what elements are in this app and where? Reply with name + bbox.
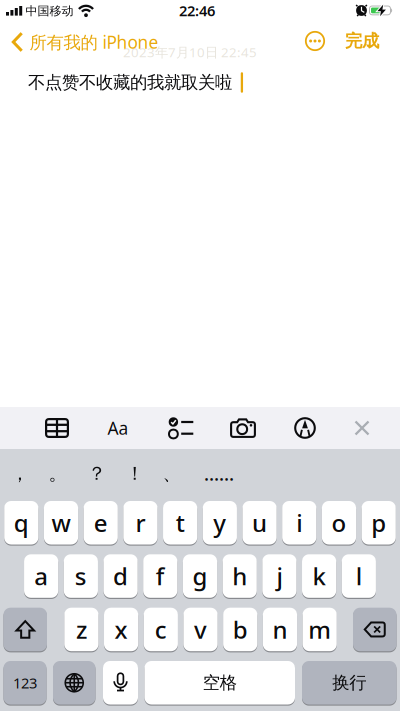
staticText: 中国移动 [25,4,73,18]
staticText: w [51,507,70,539]
button[interactable]: 换行 [302,661,396,704]
staticText: y [213,507,226,539]
button[interactable]: i [282,501,316,544]
staticText: ！ [125,462,144,485]
button[interactable]: l [342,554,376,598]
staticText: d [113,560,128,592]
staticText: 不点赞不收藏的我就取关啦 [28,72,232,93]
staticText: 2023年7月10日 22:45 [123,43,257,61]
button[interactable]: ！ [117,453,153,493]
staticText: i [296,507,302,539]
button[interactable]: m [303,608,337,651]
button[interactable]: d [103,554,138,598]
button[interactable]: z [64,608,98,651]
button[interactable]: k [302,554,336,598]
button[interactable]: h [223,554,257,598]
button[interactable]: 完成 [337,26,387,56]
staticText: …… [204,461,234,486]
staticText: 、 [162,462,181,485]
staticText: ， [10,462,29,485]
staticText: g [192,560,207,592]
button[interactable]: b [223,608,257,651]
button[interactable]: 123 [3,661,46,704]
button[interactable]: …… [201,453,237,493]
staticText: o [331,507,346,539]
button[interactable]: Shift [3,608,47,651]
button[interactable]: 更多 [300,26,330,56]
button[interactable]: ？ [79,453,115,493]
button[interactable]: 标记 [283,407,327,449]
button[interactable]: n [263,608,297,651]
staticText: u [252,507,267,539]
staticText: n [272,613,287,645]
button[interactable]: v [183,608,218,651]
staticText: 空格 [203,672,237,693]
staticText: 所有我的 iPhone [29,30,158,53]
staticText: Aa [107,416,128,439]
staticText: 完成 [345,30,379,52]
button[interactable]: 格式 [96,407,140,449]
button[interactable]: 删除 [353,608,396,651]
staticText: l [356,560,362,592]
button[interactable]: e [84,501,118,544]
button[interactable]: g [183,554,217,598]
button[interactable]: y [203,501,237,544]
staticText: 123 [13,673,37,692]
button[interactable]: 。 [40,453,76,493]
button[interactable]: u [242,501,277,544]
staticText: c [155,613,167,645]
staticText: 22:46 [179,1,215,20]
staticText: e [94,507,108,539]
staticText: k [313,560,326,592]
button[interactable]: r [123,501,157,544]
staticText: a [34,560,48,592]
button[interactable]: a [24,554,58,598]
button[interactable]: 下一个键盘 [53,661,95,704]
button[interactable]: p [362,501,396,544]
button[interactable]: j [262,554,296,598]
button[interactable]: 所有我的 iPhone [11,30,158,53]
button[interactable]: 表格 [35,407,79,449]
button[interactable]: 、 [154,453,190,493]
staticText: t [176,507,185,539]
staticText: v [194,613,207,645]
button[interactable]: q [4,501,38,544]
button[interactable]: s [64,554,98,598]
staticText: 换行 [332,672,366,693]
staticText: p [371,507,386,539]
button[interactable]: ， [2,453,38,493]
staticText: s [75,560,87,592]
staticText: r [135,507,145,539]
button[interactable]: f [143,554,177,598]
button[interactable]: 关闭 [340,407,384,449]
staticText: ？ [87,462,106,485]
staticText: q [14,507,29,539]
staticText: z [76,613,87,645]
button[interactable]: w [44,501,78,544]
staticText: f [156,560,165,592]
button[interactable]: 听写 [103,661,138,704]
staticText: b [233,613,248,645]
button[interactable]: 相机 [221,407,265,449]
button[interactable]: t [163,501,197,544]
button[interactable]: x [104,608,138,651]
button[interactable]: o [322,501,356,544]
staticText: m [308,613,331,645]
staticText: h [232,560,247,592]
staticText: x [115,613,128,645]
button[interactable]: c [144,608,178,651]
staticText: 。 [48,462,67,485]
button[interactable]: 空格 [144,661,295,704]
button[interactable]: 核对清单 [159,407,203,449]
staticText: j [276,560,282,592]
